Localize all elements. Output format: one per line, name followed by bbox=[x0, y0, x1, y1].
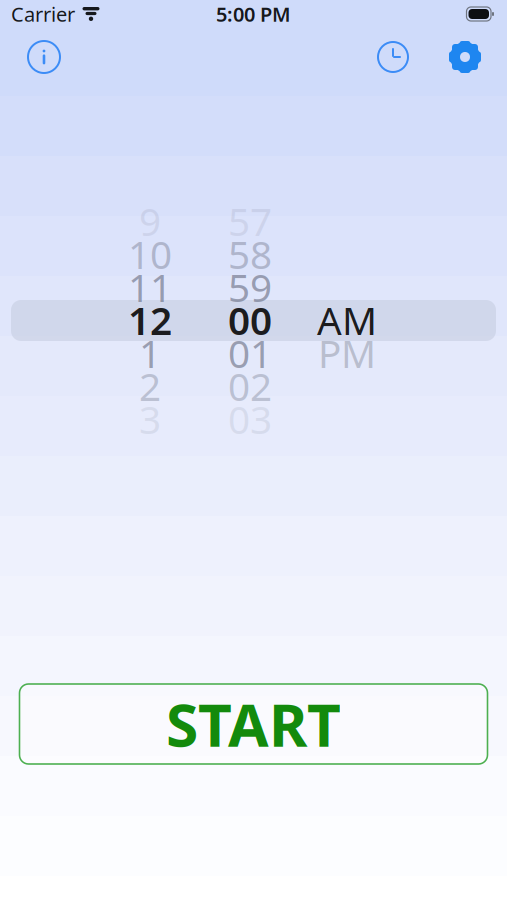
button[interactable]: Settings bbox=[442, 34, 488, 80]
staticText: 12 bbox=[128, 294, 172, 346]
staticText: 5:00 PM bbox=[216, 1, 291, 27]
staticText: 01 bbox=[228, 327, 272, 379]
staticText: 3 bbox=[139, 393, 161, 445]
staticText: 10 bbox=[128, 228, 172, 280]
button[interactable]: History bbox=[370, 34, 416, 80]
staticText: 57 bbox=[228, 195, 272, 247]
staticText: Carrier bbox=[11, 1, 75, 27]
staticText: 1 bbox=[139, 327, 161, 379]
staticText: 11 bbox=[128, 261, 172, 313]
staticText: 03 bbox=[228, 393, 272, 445]
staticText: 58 bbox=[228, 228, 272, 280]
staticText: AM bbox=[317, 294, 377, 346]
staticText: 02 bbox=[228, 360, 272, 412]
staticText: PM bbox=[318, 327, 376, 379]
staticText: 2 bbox=[139, 360, 161, 412]
staticText: 9 bbox=[139, 195, 161, 247]
staticText: START bbox=[166, 685, 341, 763]
button[interactable]: Info bbox=[21, 34, 67, 80]
staticText: 00 bbox=[228, 294, 272, 346]
staticText: 59 bbox=[228, 261, 272, 313]
button[interactable]: START bbox=[19, 684, 487, 764]
